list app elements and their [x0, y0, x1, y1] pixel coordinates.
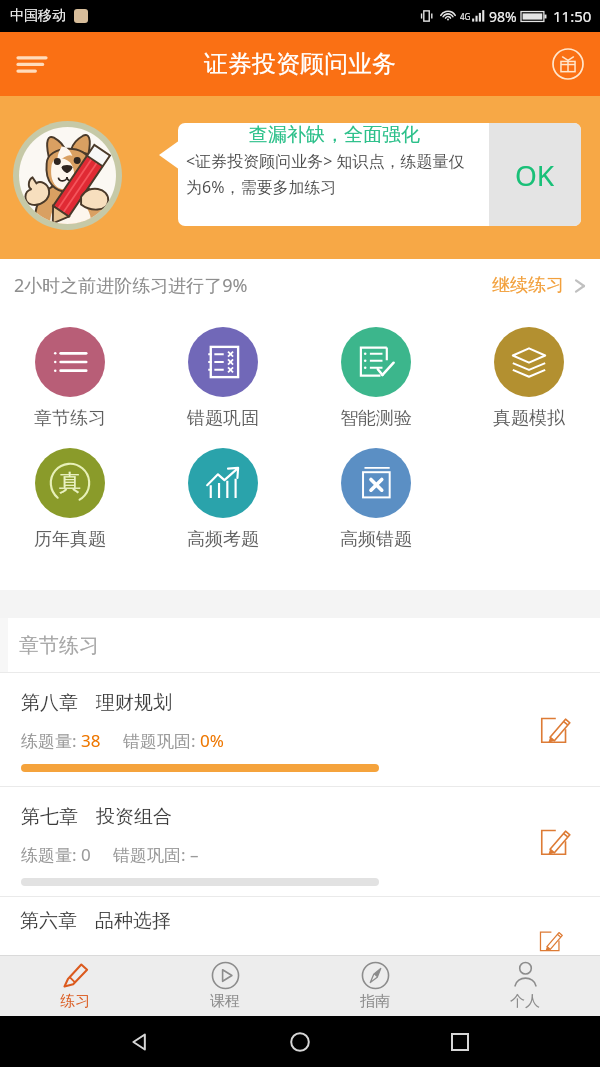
staticText: 章节练习: [19, 633, 99, 658]
button[interactable]: OK: [489, 123, 581, 226]
staticText: 个人: [510, 992, 540, 1011]
button[interactable]: 指南: [300, 956, 450, 1016]
button[interactable]: Edit: [532, 820, 576, 864]
staticText: 证券投资顾问业务: [204, 49, 396, 79]
button[interactable]: 第七章: [0, 787, 600, 896]
button[interactable]: Home: [280, 1022, 320, 1062]
button[interactable]: 高频考题: [188, 448, 258, 551]
button[interactable]: 错题巩固: [188, 327, 258, 430]
staticText: 错题巩固: [168, 407, 278, 430]
button[interactable]: Avatar: [13, 121, 122, 230]
staticText: 章节练习: [15, 407, 125, 430]
staticText: 理财规划: [96, 691, 172, 715]
staticText: 真题模拟: [474, 407, 584, 430]
staticText: 高频考题: [168, 528, 278, 551]
staticText: 第八章: [21, 691, 78, 715]
button[interactable]: 高频错题: [341, 448, 411, 551]
staticText: 练习: [60, 992, 90, 1011]
staticText: 指南: [360, 992, 390, 1011]
staticText: 继续练习: [492, 274, 564, 297]
button[interactable]: Menu: [6, 38, 58, 90]
staticText: 中国移动: [10, 7, 66, 25]
staticText: 11:50: [553, 6, 592, 26]
button[interactable]: Gift: [546, 42, 590, 86]
button[interactable]: 章节练习: [35, 327, 105, 430]
staticText: 查漏补缺，全面强化: [186, 123, 483, 147]
button[interactable]: 课程: [150, 956, 300, 1016]
staticText: 第六章: [20, 909, 77, 933]
button[interactable]: 第八章: [0, 673, 600, 786]
button[interactable]: 2小时之前进阶练习进行了9%: [0, 259, 600, 312]
button[interactable]: Recents: [440, 1022, 480, 1062]
button[interactable]: Edit: [532, 708, 576, 752]
button[interactable]: 真: [35, 448, 105, 551]
staticText: 高频错题: [321, 528, 431, 551]
staticText: 品种选择: [95, 909, 171, 933]
staticText: 智能测验: [321, 407, 431, 430]
staticText: 课程: [210, 992, 240, 1011]
staticText: 历年真题: [15, 528, 125, 551]
button[interactable]: 练习: [0, 956, 150, 1016]
staticText: 投资组合: [96, 805, 172, 829]
staticText: 2小时之前进阶练习进行了9%: [14, 273, 248, 298]
button[interactable]: 智能测验: [341, 327, 411, 430]
staticText: 练题量: 38: [21, 729, 101, 752]
staticText: 98%: [489, 7, 517, 26]
button[interactable]: 真题模拟: [494, 327, 564, 430]
staticText: 错题巩固: –: [113, 843, 199, 866]
staticText: <证券投资顾问业务> 知识点，练题量仅 为6%，需要多加练习: [186, 150, 465, 197]
button[interactable]: 个人: [450, 956, 600, 1016]
staticText: 真: [59, 469, 81, 497]
staticText: OK: [515, 156, 555, 194]
staticText: 4G: [460, 11, 471, 22]
staticText: 第七章: [21, 805, 78, 829]
staticText: 练题量: 0: [21, 843, 91, 866]
button[interactable]: Back: [120, 1022, 160, 1062]
staticText: 错题巩固: 0%: [123, 729, 224, 752]
